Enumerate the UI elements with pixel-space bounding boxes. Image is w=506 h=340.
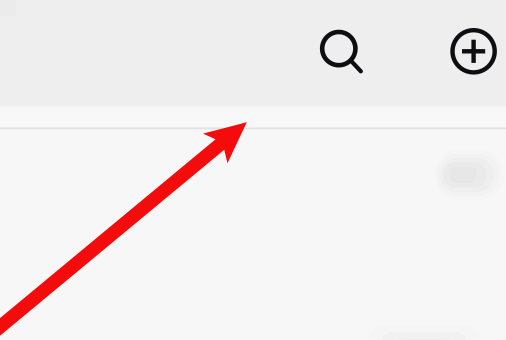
button[interactable]: Search xyxy=(0,0,506,340)
button[interactable]: Compose xyxy=(0,0,506,340)
